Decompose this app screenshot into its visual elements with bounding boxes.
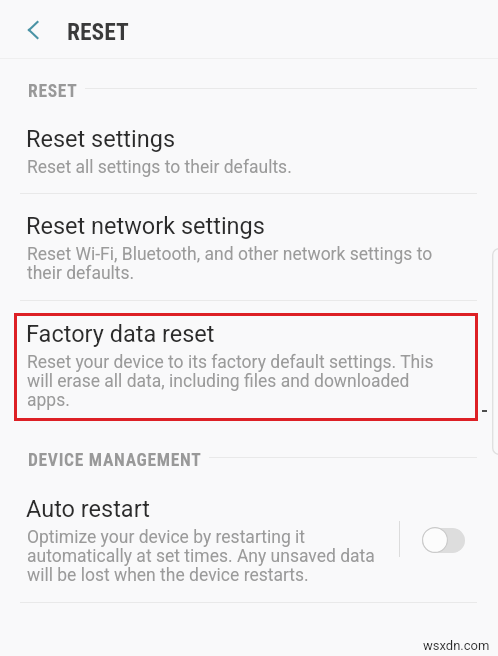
button[interactable] — [0, 110, 498, 193]
button[interactable]: Auto restart, off — [410, 512, 476, 568]
staticText: RESET — [28, 81, 78, 102]
staticText: RESET — [67, 18, 129, 46]
staticText: Reset settings — [26, 125, 176, 153]
button[interactable]: Navigate up — [13, 13, 53, 53]
staticText: Auto restart — [26, 495, 150, 523]
staticText: Reset network settings — [26, 212, 265, 240]
staticText: DEVICE MANAGEMENT — [28, 450, 202, 471]
staticText: Reset Wi-Fi, Bluetooth, and other networ… — [27, 244, 433, 284]
staticText: wsxdn.com — [423, 638, 490, 653]
button[interactable] — [0, 194, 498, 300]
button[interactable] — [0, 301, 498, 431]
staticText: Optimize your device by restarting it au… — [27, 527, 375, 586]
staticText: Reset all settings to their defaults. — [27, 157, 292, 178]
staticText: Factory data reset — [26, 320, 215, 348]
button[interactable] — [0, 480, 498, 600]
staticText: Reset your device to its factory default… — [27, 352, 434, 411]
